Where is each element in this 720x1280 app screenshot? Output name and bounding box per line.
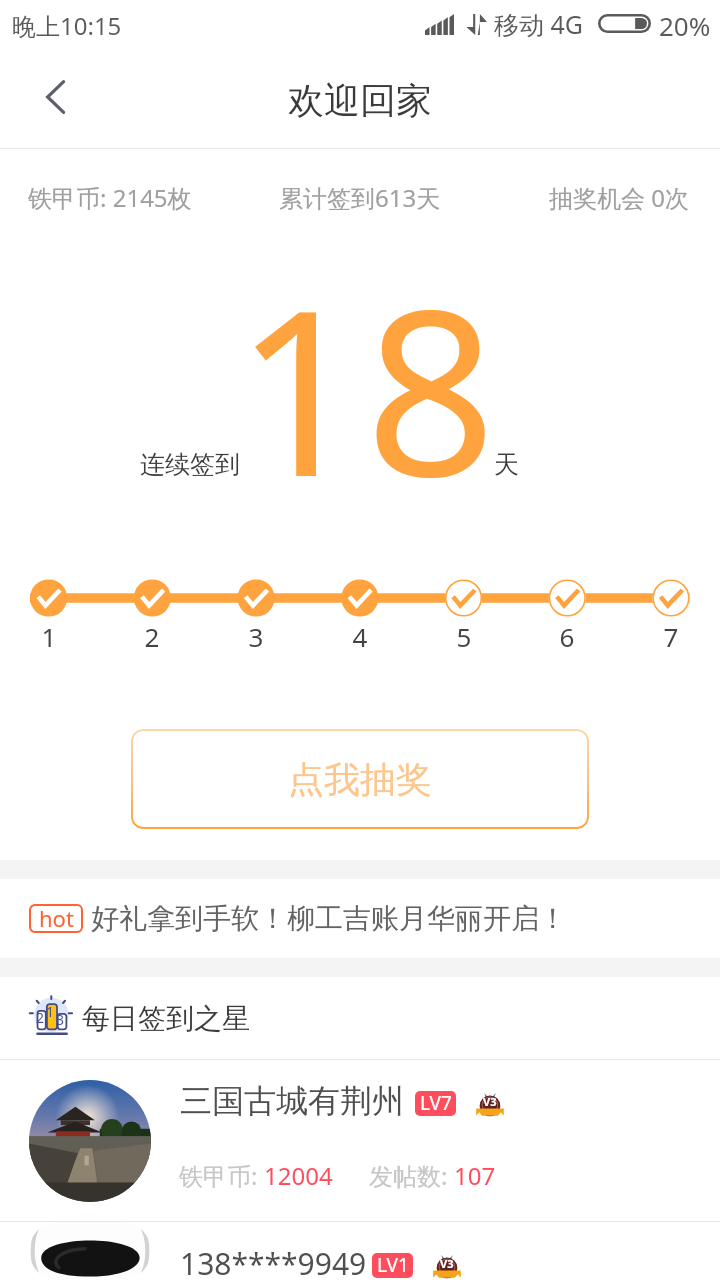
- staticText: 107: [454, 1159, 496, 1192]
- staticText: V3: [440, 1256, 454, 1271]
- staticText: 1: [29, 619, 69, 654]
- staticText: 20%: [659, 8, 711, 43]
- staticText: 3: [56, 1010, 65, 1026]
- staticText: 抽奖机会 0次: [549, 181, 689, 214]
- staticText: 5: [444, 619, 484, 654]
- staticText: 每日签到之星: [82, 1001, 250, 1036]
- staticText: 点我抽奖: [288, 757, 432, 802]
- staticText: 12004: [264, 1159, 333, 1192]
- staticText: V3: [483, 1094, 497, 1109]
- staticText: 2: [36, 1008, 45, 1024]
- button[interactable]: 138****9949: [0, 1222, 720, 1280]
- staticText: 4: [340, 619, 380, 654]
- button[interactable]: 三国古城有荆州: [0, 1060, 720, 1221]
- staticText: 欢迎回家: [288, 78, 432, 123]
- button[interactable]: 点我抽奖: [131, 729, 589, 829]
- staticText: hot: [39, 903, 74, 932]
- staticText: 三国古城有荆州: [180, 1081, 404, 1121]
- staticText: 138****9949: [180, 1243, 367, 1280]
- staticText: 铁甲币:: [179, 1159, 264, 1192]
- staticText: 2: [132, 619, 172, 654]
- staticText: 好礼拿到手软！柳工吉账月华丽开启！: [91, 901, 567, 936]
- staticText: 18: [235, 232, 496, 536]
- staticText: 连续签到: [140, 449, 240, 480]
- staticText: 3: [236, 619, 276, 654]
- button[interactable]: Back: [0, 56, 112, 148]
- staticText: LV1: [377, 1253, 409, 1277]
- staticText: 天: [494, 449, 519, 480]
- staticText: 1: [46, 1002, 55, 1018]
- staticText: 晚上10:15: [12, 9, 122, 42]
- staticText: 累计签到613天: [279, 181, 441, 214]
- staticText: 铁甲币: 2145枚: [28, 181, 192, 214]
- staticText: LV7: [420, 1091, 452, 1115]
- staticText: 7: [651, 619, 691, 654]
- staticText: 发帖数:: [369, 1159, 454, 1192]
- staticText: 6: [547, 619, 587, 654]
- button[interactable]: hot: [0, 879, 720, 958]
- staticText: 移动 4G: [494, 7, 584, 41]
